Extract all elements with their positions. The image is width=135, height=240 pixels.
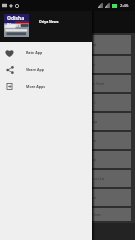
staticText: Sanchar	[84, 196, 97, 200]
button[interactable]: Business Line	[0, 170, 131, 187]
staticText: Share App	[26, 67, 45, 72]
button[interactable]: Odisha Times	[0, 75, 131, 92]
staticText: Nitidina	[84, 139, 96, 143]
button[interactable]: Rate App	[0, 44, 92, 61]
staticText: Oriya News	[39, 19, 59, 24]
button[interactable]: Odia Times	[0, 208, 131, 221]
button[interactable]: Nitidina	[0, 132, 131, 149]
staticText: Dharitri	[84, 101, 96, 105]
staticText: Rate App	[26, 50, 43, 55]
staticText: Samaya	[84, 158, 96, 162]
button[interactable]: Sanchar	[0, 189, 131, 206]
staticText: Odisha News	[7, 15, 29, 29]
staticText: Odia Times	[84, 213, 101, 217]
staticText: LATEST ODIA NEWS PAPERS	[3, 27, 46, 31]
staticText: 2:46	[120, 3, 129, 9]
staticText: More Apps	[26, 84, 46, 89]
staticText: Samaja	[84, 63, 95, 67]
button[interactable]: Share App	[0, 61, 92, 78]
button[interactable]: Prameya	[0, 113, 131, 130]
button[interactable]: Samaja	[0, 56, 131, 73]
staticText: Prameya	[84, 120, 98, 124]
button[interactable]: Samaya	[0, 151, 131, 168]
staticText: Odisha Times	[84, 82, 105, 86]
staticText: Sambad	[84, 43, 97, 47]
button[interactable]: Sambad	[0, 35, 131, 54]
staticText: Business Line	[84, 177, 105, 181]
button[interactable]: Dharitri	[0, 94, 131, 111]
button[interactable]: More Apps	[0, 78, 92, 95]
